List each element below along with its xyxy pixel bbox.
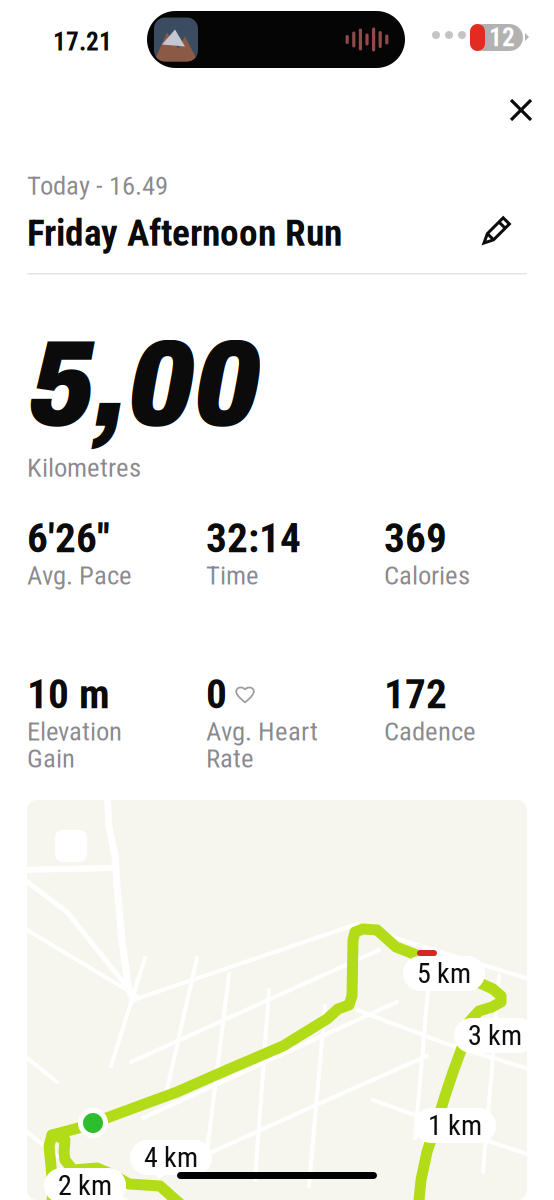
staticText: Rate	[206, 743, 254, 774]
staticText: 12	[489, 23, 515, 52]
staticText: 4 km	[144, 1141, 198, 1174]
staticText: Today - 16.49	[27, 170, 168, 201]
staticText: Avg. Heart	[206, 716, 318, 747]
staticText: Elevation	[27, 716, 122, 747]
staticText: 5 km	[417, 957, 471, 990]
button[interactable]: Close	[500, 89, 542, 131]
staticText: Time	[206, 560, 259, 591]
staticText: 3 km	[468, 1019, 522, 1052]
staticText: 32:14	[206, 514, 301, 562]
staticText: 172	[384, 670, 447, 718]
staticText: Gain	[27, 743, 75, 774]
staticText: 1 km	[428, 1109, 482, 1142]
staticText: Kilometres	[27, 452, 141, 483]
staticText: Cadence	[384, 716, 476, 747]
staticText: 2 km	[58, 1169, 112, 1200]
staticText: 369	[384, 514, 447, 562]
staticText: 0	[206, 670, 227, 718]
staticText: Avg. Pace	[27, 560, 132, 591]
staticText: 10 m	[27, 670, 110, 718]
button[interactable]: Edit run name	[476, 207, 520, 251]
staticText: 6'26''	[27, 514, 110, 562]
staticText: 5,00	[29, 318, 260, 451]
staticText: Calories	[384, 560, 470, 591]
button[interactable]: Map options	[55, 830, 87, 862]
staticText: Friday Afternoon Run	[27, 211, 342, 255]
staticText: 17.21	[53, 27, 112, 57]
